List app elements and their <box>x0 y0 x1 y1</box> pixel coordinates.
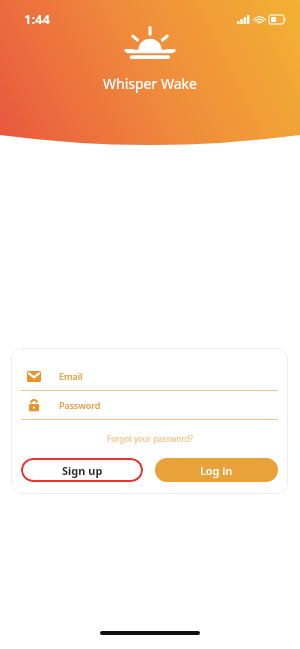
button[interactable]: Forgot your password? <box>101 430 199 447</box>
staticText: Log in <box>200 463 233 478</box>
staticText: Sign up <box>62 463 103 478</box>
button[interactable]: Log in <box>155 458 278 482</box>
button[interactable]: Password <box>21 391 278 419</box>
staticText: Password <box>59 399 101 411</box>
staticText: Email <box>59 370 83 382</box>
button[interactable]: Sign up <box>21 458 143 482</box>
staticText: Whisper Wake <box>103 74 197 93</box>
button[interactable]: Email <box>21 362 278 390</box>
staticText: 1:44 <box>24 10 50 28</box>
